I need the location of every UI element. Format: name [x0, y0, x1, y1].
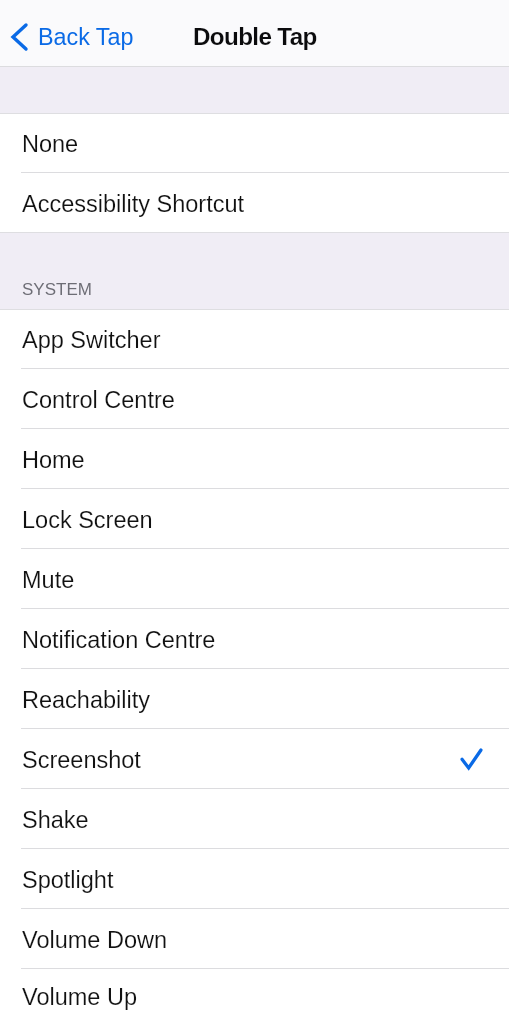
- button[interactable]: Lock Screen: [0, 489, 509, 549]
- staticText: Volume Down: [22, 927, 167, 953]
- staticText: Control Centre: [22, 387, 175, 413]
- button[interactable]: Back: [0, 0, 144, 67]
- staticText: Back Tap: [38, 24, 134, 50]
- staticText: Home: [22, 447, 85, 473]
- staticText: App Switcher: [22, 327, 161, 353]
- button[interactable]: Spotlight: [0, 849, 509, 909]
- other: Selected: [462, 750, 481, 768]
- button[interactable]: Accessibility Shortcut: [0, 173, 509, 233]
- button[interactable]: Control Centre: [0, 369, 509, 429]
- staticText: Volume Up: [22, 984, 137, 1010]
- button[interactable]: Volume Down: [0, 909, 509, 969]
- staticText: SYSTEM: [22, 280, 92, 299]
- button[interactable]: Reachability: [0, 669, 509, 729]
- other: Back: [13, 25, 26, 49]
- button[interactable]: App Switcher: [0, 309, 509, 369]
- button[interactable]: Screenshot: [0, 729, 509, 789]
- staticText: None: [22, 131, 79, 157]
- button[interactable]: Volume Up: [0, 969, 509, 1024]
- staticText: Notification Centre: [22, 627, 216, 653]
- staticText: Double Tap: [193, 23, 317, 50]
- staticText: Shake: [22, 807, 89, 833]
- staticText: Mute: [22, 567, 75, 593]
- button[interactable]: Shake: [0, 789, 509, 849]
- staticText: Accessibility Shortcut: [22, 191, 245, 217]
- staticText: Reachability: [22, 687, 151, 713]
- button[interactable]: None: [0, 113, 509, 173]
- button[interactable]: Mute: [0, 549, 509, 609]
- button[interactable]: Notification Centre: [0, 609, 509, 669]
- staticText: Spotlight: [22, 867, 114, 893]
- staticText: Lock Screen: [22, 507, 153, 533]
- button[interactable]: Home: [0, 429, 509, 489]
- staticText: Screenshot: [22, 747, 141, 773]
